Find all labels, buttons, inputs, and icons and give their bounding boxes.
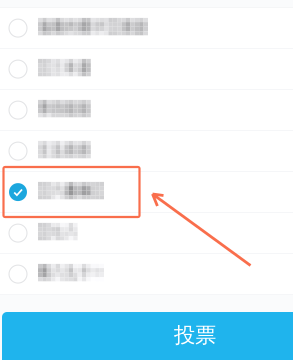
button[interactable] — [0, 254, 293, 294]
button[interactable] — [0, 172, 293, 212]
button[interactable] — [0, 213, 293, 253]
button[interactable]: 投票 — [0, 0, 293, 360]
button[interactable] — [0, 131, 293, 171]
button[interactable] — [0, 49, 293, 89]
button[interactable] — [0, 90, 293, 130]
button[interactable] — [0, 8, 293, 48]
staticText: 投票 — [174, 322, 216, 348]
